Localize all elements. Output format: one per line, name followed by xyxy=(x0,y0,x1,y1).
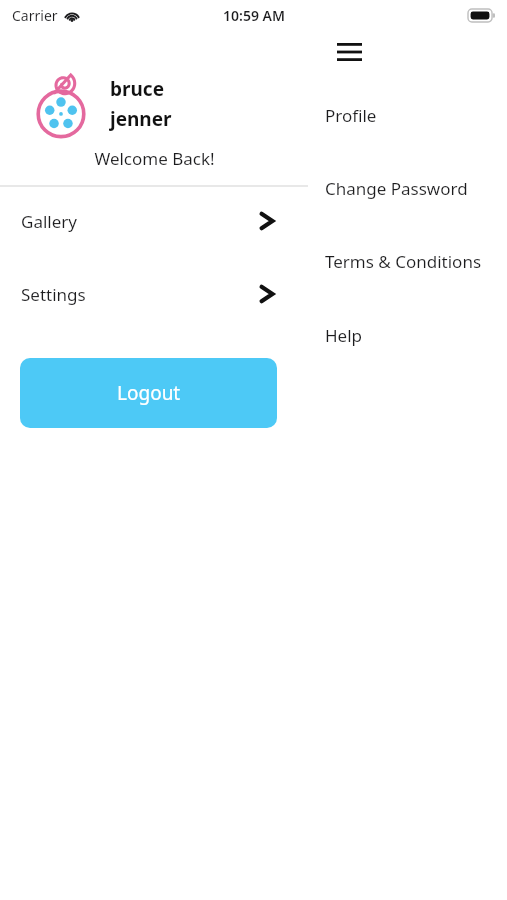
button[interactable]: Profile xyxy=(325,93,507,137)
staticText: Settings xyxy=(21,283,86,306)
staticText: jenner xyxy=(110,106,172,132)
staticText: Help xyxy=(325,324,363,347)
button[interactable]: Change Password xyxy=(325,166,507,210)
staticText: Terms & Conditions xyxy=(325,250,482,273)
staticText: bruce xyxy=(110,76,164,102)
button[interactable]: Menu xyxy=(325,32,373,72)
staticText: Carrier xyxy=(12,6,58,25)
button[interactable]: Settings xyxy=(0,271,290,317)
staticText: Logout xyxy=(117,380,181,406)
staticText: 10:59 AM xyxy=(223,6,285,25)
staticText: Profile xyxy=(325,104,377,127)
button[interactable]: Logout xyxy=(20,358,277,428)
staticText: Welcome Back! xyxy=(94,147,215,170)
button[interactable]: Help xyxy=(325,313,507,357)
staticText: Change Password xyxy=(325,177,468,200)
button[interactable]: Terms & Conditions xyxy=(325,239,507,283)
button[interactable]: Gallery xyxy=(0,198,290,244)
staticText: Gallery xyxy=(21,210,77,233)
